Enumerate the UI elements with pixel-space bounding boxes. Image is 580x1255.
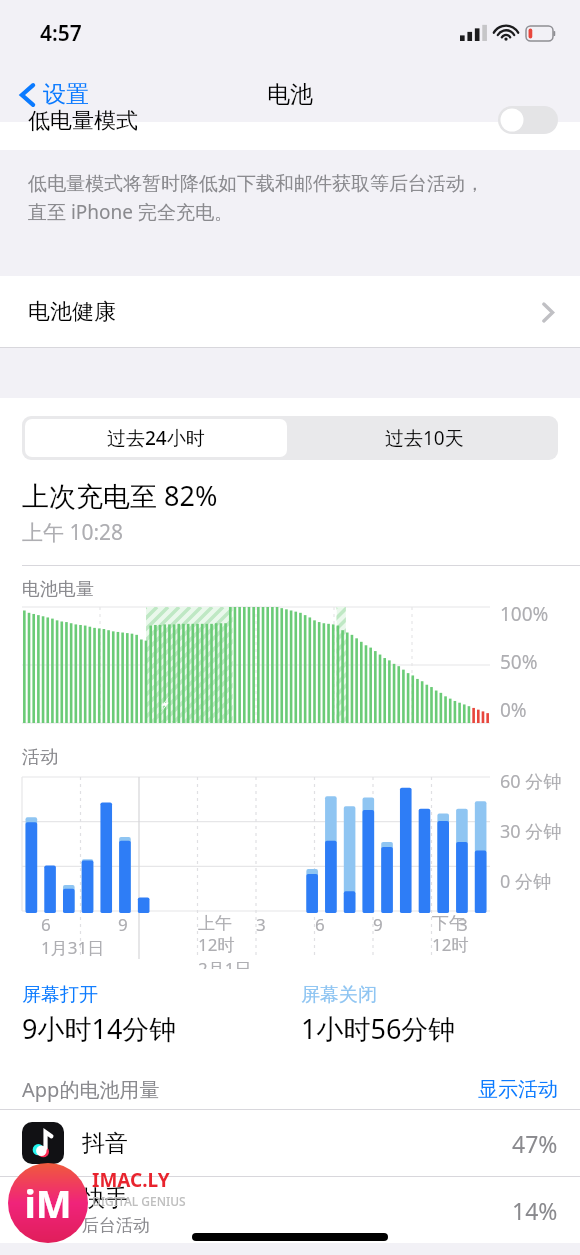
button[interactable]: 过去10天 — [290, 416, 558, 460]
staticText: 6 — [41, 913, 51, 936]
button[interactable]: 设置 — [14, 76, 95, 113]
staticText: DIGITAL GENIUS — [92, 1193, 186, 1209]
staticText: 50% — [500, 649, 538, 675]
staticText: 14% — [512, 1195, 558, 1226]
staticText: 过去24小时 — [107, 425, 205, 451]
staticText: 30 分钟 — [500, 819, 562, 844]
staticText: 1小时56分钟 — [301, 1010, 456, 1047]
button[interactable]: 过去24小时 — [25, 419, 287, 457]
staticText: IMAC.LY — [92, 1167, 170, 1193]
staticText: 1月31日 — [41, 936, 105, 959]
button[interactable]: 电池健康 — [0, 276, 580, 348]
staticText: 6 — [315, 913, 325, 936]
staticText: 下午 12时 — [432, 913, 469, 957]
button[interactable]: 抖音 — [0, 1110, 580, 1176]
staticText: 60 分钟 — [500, 769, 562, 794]
staticText: 低电量模式 — [28, 107, 138, 135]
staticText: 上次充电至 82% — [22, 477, 218, 514]
staticText: App的电池用量 — [22, 1076, 160, 1103]
staticText: 9 — [118, 913, 128, 936]
staticText: 上午 10:28 — [22, 518, 124, 547]
staticText: 上午 12时 — [198, 913, 235, 957]
staticText: 电池健康 — [28, 298, 116, 326]
staticText: 电池 — [267, 80, 313, 109]
staticText: 屏幕关闭 — [301, 983, 377, 1007]
staticText: 4:57 — [40, 19, 82, 48]
staticText: 2月1日 — [198, 957, 252, 969]
staticText: 100% — [500, 601, 549, 627]
button[interactable]: 显示活动 — [456, 1073, 580, 1106]
staticText: 9 — [373, 913, 383, 936]
staticText: 后台活动 — [82, 1215, 150, 1236]
staticText: 显示活动 — [478, 1077, 558, 1102]
staticText: 低电量模式将暂时降低如下载和邮件获取等后台活动， 直至 iPhone 完全充电。 — [28, 172, 484, 225]
staticText: 3 — [256, 913, 266, 936]
staticText: 抖音 — [82, 1129, 128, 1158]
staticText: 电池电量 — [22, 578, 94, 601]
button[interactable]: 快手 — [0, 1177, 580, 1243]
staticText: 屏幕打开 — [22, 983, 98, 1007]
staticText: 过去10天 — [385, 425, 464, 451]
staticText: 活动 — [22, 746, 58, 769]
staticText: 47% — [512, 1128, 558, 1159]
staticText: 0% — [500, 697, 527, 723]
staticText: 设置 — [43, 80, 89, 109]
staticText: 3 — [458, 913, 468, 936]
staticText: 0 分钟 — [500, 869, 551, 894]
staticText: 9小时14分钟 — [22, 1010, 177, 1047]
button[interactable]: 低电量模式 — [0, 122, 580, 150]
staticText: iM — [24, 1177, 72, 1229]
staticText: 快手 — [82, 1184, 128, 1213]
